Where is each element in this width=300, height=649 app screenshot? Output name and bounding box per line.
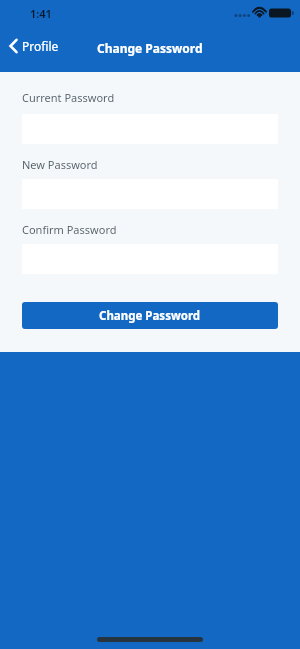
button[interactable]: Change Password: [22, 302, 278, 329]
staticText: 1:41: [30, 6, 52, 21]
staticText: Confirm Password: [22, 222, 117, 237]
staticText: Current Password: [22, 90, 115, 105]
staticText: New Password: [22, 157, 98, 172]
button[interactable]: Profile: [8, 38, 59, 54]
staticText: Profile: [22, 38, 59, 54]
staticText: Change Password: [99, 308, 201, 324]
staticText: Change Password: [97, 40, 203, 56]
